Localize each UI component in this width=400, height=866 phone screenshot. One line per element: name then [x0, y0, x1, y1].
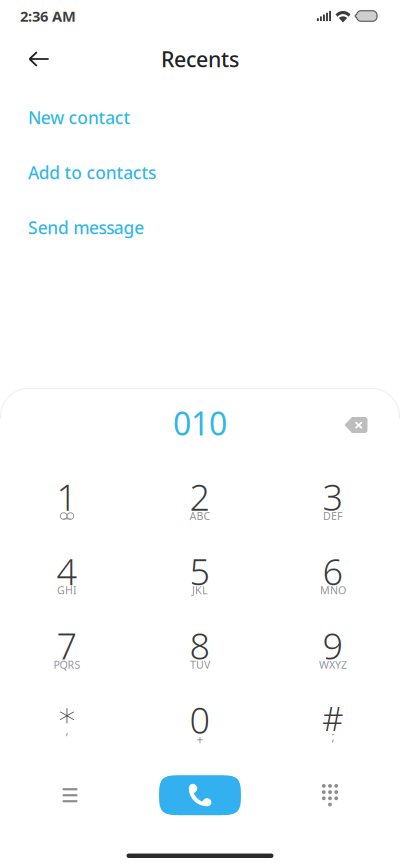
button[interactable]: 0: [133, 694, 266, 768]
button[interactable]: 4: [0, 545, 133, 620]
button[interactable]: 9: [266, 620, 399, 694]
staticText: ;: [331, 728, 334, 744]
button[interactable]: #: [266, 694, 399, 768]
button[interactable]: 1: [0, 471, 133, 545]
button[interactable]: Call: [140, 772, 260, 818]
button[interactable]: Send message: [0, 200, 400, 255]
button[interactable]: 7: [0, 620, 133, 694]
staticText: Add to contacts: [28, 161, 156, 184]
staticText: 1: [56, 473, 77, 521]
staticText: 2:36 AM: [20, 6, 76, 26]
staticText: GHI: [57, 583, 77, 597]
staticText: WXYZ: [319, 657, 347, 672]
button[interactable]: Delete: [333, 401, 379, 445]
button[interactable]: ∗: [0, 694, 133, 768]
staticText: ∗: [56, 696, 77, 734]
staticText: 8: [189, 622, 210, 669]
staticText: 2: [189, 473, 210, 521]
button[interactable]: Add to contacts: [0, 145, 400, 200]
staticText: #: [322, 696, 344, 740]
staticText: 4: [56, 547, 77, 595]
staticText: ,: [65, 722, 68, 738]
staticText: 3: [322, 473, 343, 521]
staticText: DEF: [323, 509, 343, 523]
button[interactable]: 5: [133, 545, 266, 620]
staticText: +: [196, 732, 203, 748]
button[interactable]: New contact: [0, 90, 400, 145]
staticText: 9: [322, 622, 343, 669]
staticText: MNO: [320, 583, 346, 597]
button[interactable]: 8: [133, 620, 266, 694]
staticText: 0: [189, 696, 210, 744]
staticText: 6: [322, 547, 343, 595]
staticText: ABC: [189, 509, 210, 523]
button[interactable]: 2: [133, 471, 266, 545]
staticText: 5: [189, 547, 210, 595]
staticText: JKL: [192, 583, 208, 597]
button[interactable]: Back: [16, 37, 62, 81]
staticText: Recents: [161, 45, 239, 73]
button[interactable]: 6: [266, 545, 399, 620]
staticText: PQRS: [53, 657, 80, 672]
button[interactable]: Keypad: [260, 772, 400, 818]
staticText: 7: [56, 622, 77, 669]
staticText: TUV: [190, 657, 210, 672]
button[interactable]: 3: [266, 471, 399, 545]
staticText: New contact: [28, 106, 130, 129]
staticText: 010: [173, 402, 227, 444]
staticText: Send message: [28, 216, 144, 239]
button[interactable]: Call log: [0, 772, 140, 818]
